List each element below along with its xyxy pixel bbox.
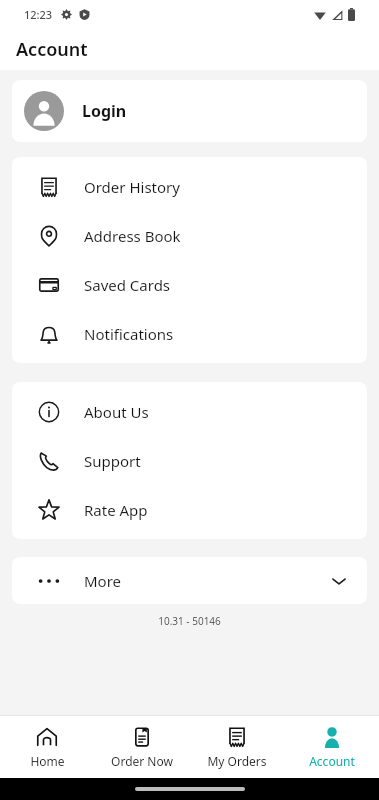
- staticText: Address Book: [84, 226, 181, 246]
- staticText: Order History: [84, 177, 180, 197]
- staticText: Saved Cards: [84, 275, 171, 295]
- staticText: Login: [82, 100, 127, 122]
- staticText: Order Now: [111, 753, 173, 769]
- button[interactable]: Saved Cards: [12, 260, 367, 309]
- staticText: Rate App: [84, 500, 148, 520]
- button[interactable]: Support: [12, 436, 367, 485]
- staticText: Account: [16, 37, 88, 62]
- button[interactable]: Login: [12, 80, 367, 142]
- staticText: My Orders: [207, 753, 267, 769]
- staticText: Notifications: [84, 324, 174, 344]
- staticText: 12:23: [24, 7, 53, 22]
- button[interactable]: Order History: [12, 162, 367, 211]
- staticText: Home: [30, 753, 65, 769]
- staticText: 10.31 - 50146: [158, 614, 221, 628]
- button[interactable]: Notifications: [12, 309, 367, 358]
- staticText: Account: [309, 753, 355, 769]
- button[interactable]: Order Now: [94, 716, 189, 778]
- button[interactable]: Account: [284, 716, 379, 778]
- button[interactable]: More: [12, 557, 367, 604]
- staticText: Support: [84, 451, 141, 471]
- staticText: More: [84, 571, 122, 591]
- button[interactable]: My Orders: [189, 716, 284, 778]
- button[interactable]: Address Book: [12, 211, 367, 260]
- button[interactable]: Rate App: [12, 485, 367, 534]
- button[interactable]: About Us: [12, 387, 367, 436]
- button[interactable]: Home: [0, 716, 94, 778]
- staticText: About Us: [84, 402, 149, 422]
